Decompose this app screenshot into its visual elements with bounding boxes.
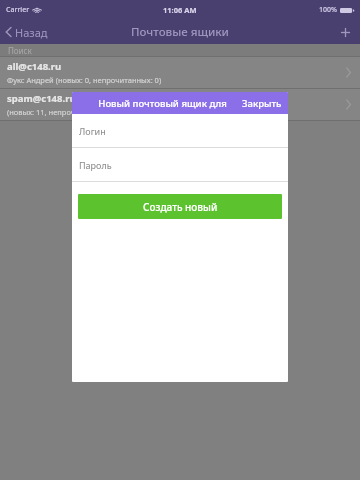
staticText: Поиск <box>8 45 32 56</box>
staticText: Фукс Андрей (новых: 0, непрочитанных: 0) <box>7 75 162 85</box>
button[interactable]: Создать новый <box>78 194 282 219</box>
button[interactable]: spam@c148.ru <box>0 89 360 120</box>
button[interactable]: all@c148.ru <box>0 57 360 88</box>
staticText: (новых: 11, непрочитанных: 11) <box>7 107 122 117</box>
staticText: Закрыть <box>242 97 282 110</box>
button[interactable]: Пароль <box>72 148 288 181</box>
staticText: Новый почтовый ящик для <box>98 97 227 110</box>
staticText: 11:06 AM <box>163 5 197 15</box>
staticText: Carrier <box>6 5 30 15</box>
staticText: spam@c148.ru <box>7 92 76 105</box>
button[interactable]: Add mailbox <box>331 20 360 44</box>
button[interactable]: Закрыть <box>236 92 288 114</box>
button[interactable]: Назад <box>0 20 56 44</box>
staticText: Создать новый <box>143 200 218 214</box>
staticText: Пароль <box>79 159 112 171</box>
staticText: all@c148.ru <box>7 60 62 73</box>
button[interactable]: Поиск <box>0 44 360 56</box>
button[interactable]: Логин <box>72 114 288 147</box>
staticText: 100% <box>319 5 337 15</box>
staticText: Почтовые ящики <box>131 24 229 40</box>
staticText: Логин <box>79 125 106 137</box>
staticText: Назад <box>15 25 48 40</box>
